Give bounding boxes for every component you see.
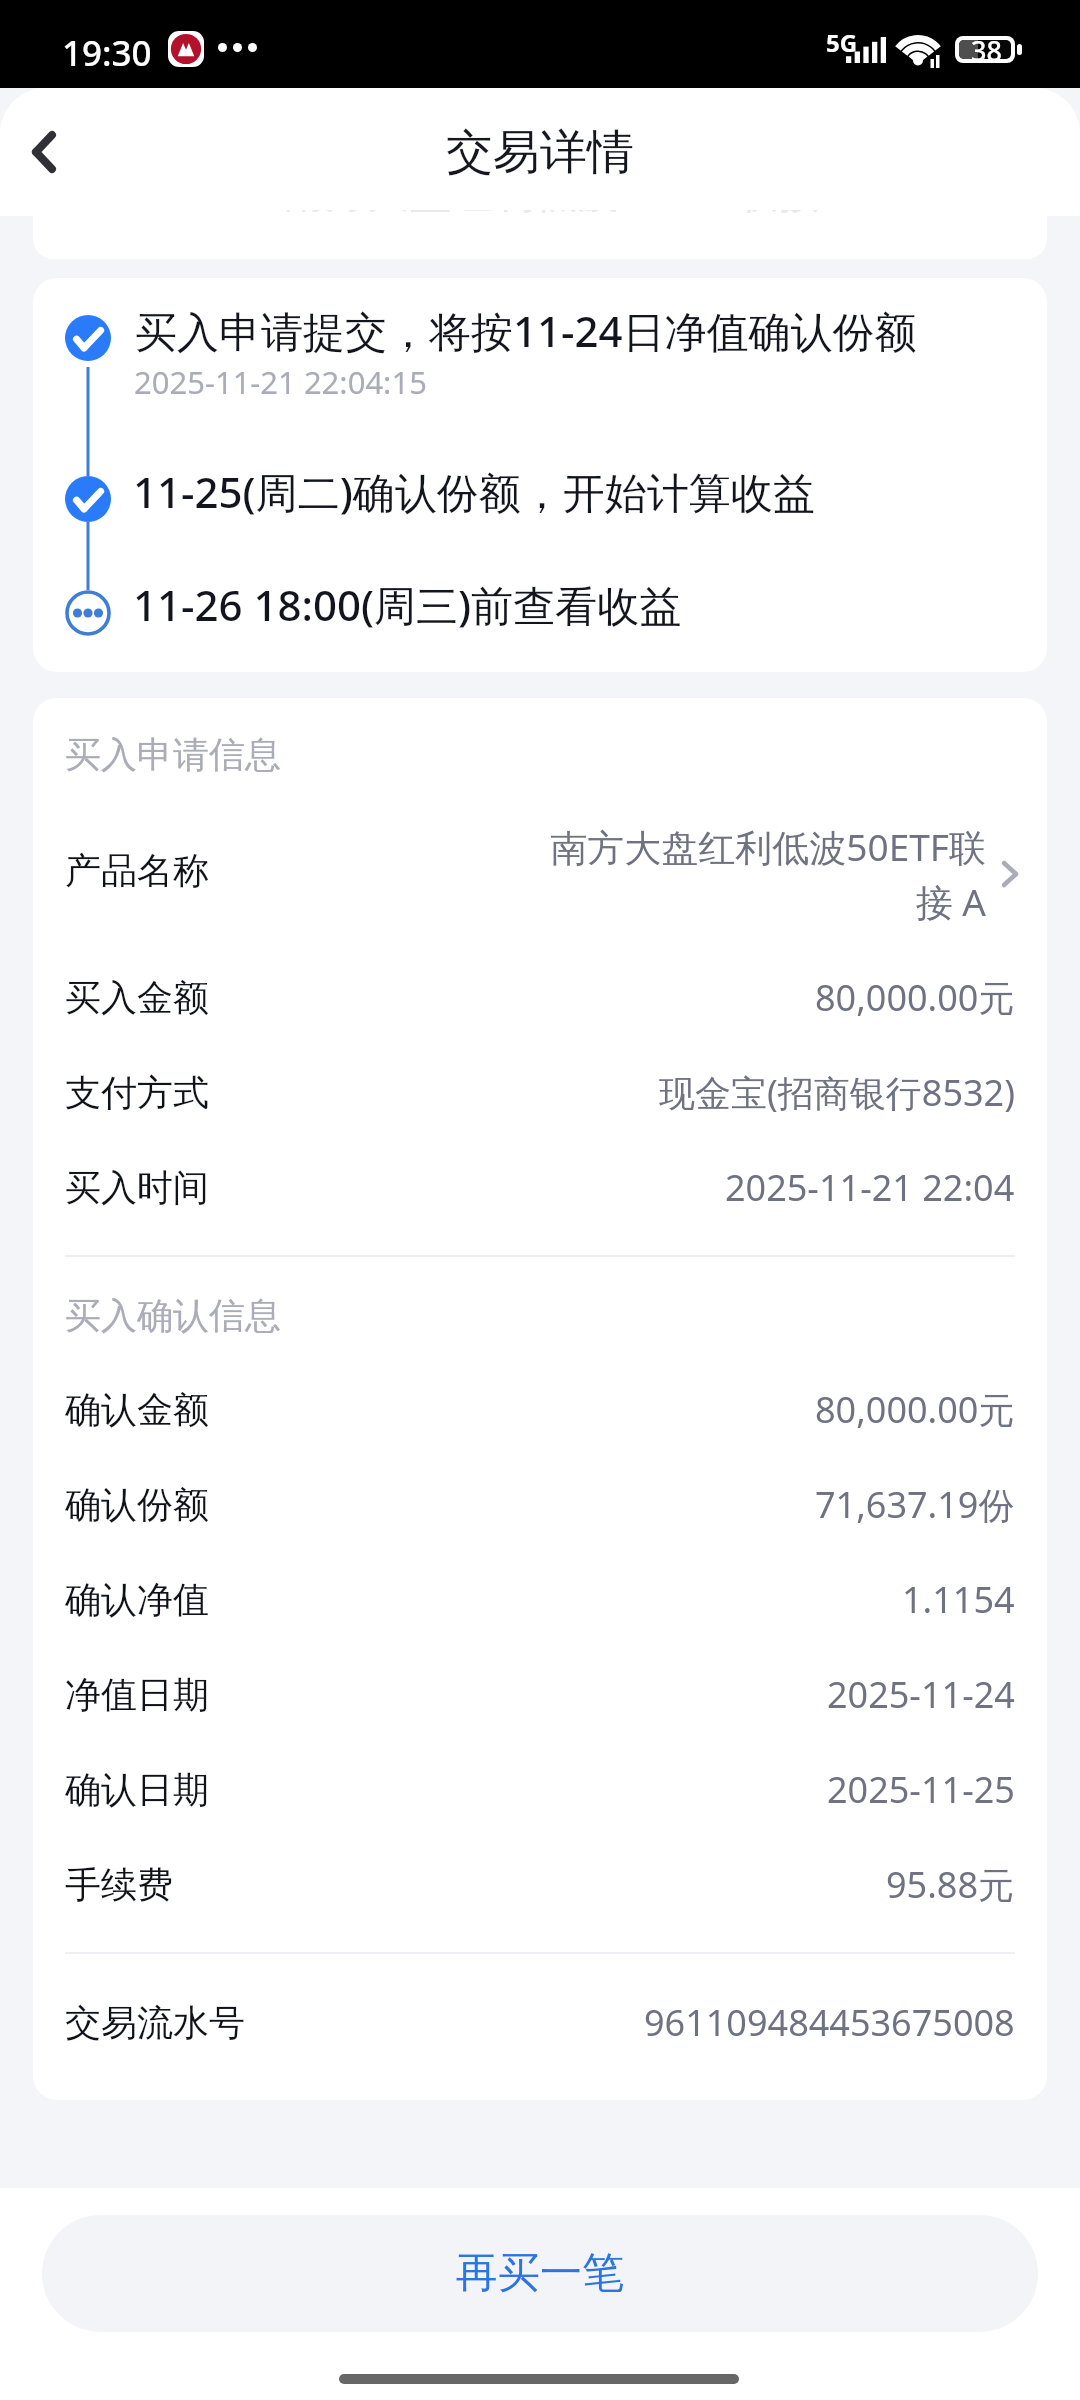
- button[interactable]: 再买一笔: [42, 2215, 1038, 2332]
- staticText: 买入申请提交，将按11-24日净值确认份额: [135, 302, 917, 359]
- staticText: 19:30: [62, 29, 152, 77]
- staticText: 南方大盘红利低波50ETF联接 A: [534, 821, 986, 927]
- staticText: 买入申请信息: [65, 732, 281, 777]
- staticText: 买入时间: [65, 1165, 209, 1210]
- staticText: 71,637.19份: [815, 1480, 1015, 1529]
- staticText: 2025-11-24: [827, 1670, 1015, 1719]
- staticText: 2025-11-25: [827, 1765, 1015, 1814]
- button[interactable]: 确认净值: [33, 1552, 1047, 1647]
- button[interactable]: 确认金额: [33, 1362, 1047, 1457]
- staticText: 38: [971, 32, 1002, 69]
- button[interactable]: 交易流水号: [33, 1975, 1047, 2070]
- button[interactable]: 确认日期: [33, 1742, 1047, 1837]
- staticText: 961109484453675008: [644, 1998, 1015, 2047]
- staticText: 95.88元: [886, 1860, 1015, 1909]
- staticText: 11-25(周二)确认份额，开始计算收益: [133, 463, 815, 520]
- staticText: 80,000.00元: [815, 973, 1015, 1022]
- staticText: 确认日期: [65, 1767, 209, 1812]
- staticText: 交易流水号: [65, 2000, 245, 2045]
- staticText: 11-26 18:00(周三)前查看收益: [133, 576, 682, 633]
- staticText: 确认净值: [65, 1577, 209, 1622]
- staticText: 交易详情: [446, 123, 634, 182]
- staticText: 80,000.00元: [815, 1385, 1015, 1434]
- button[interactable]: 买入时间: [33, 1140, 1047, 1235]
- staticText: 买入确认信息: [65, 1293, 281, 1338]
- button[interactable]: 确认份额: [33, 1457, 1047, 1552]
- staticText: 净值日期: [65, 1672, 209, 1717]
- button[interactable]: 支付方式: [33, 1045, 1047, 1140]
- staticText: 1.1154: [902, 1575, 1015, 1624]
- staticText: 再买一笔: [456, 2247, 624, 2300]
- button[interactable]: 手续费: [33, 1837, 1047, 1932]
- button[interactable]: 净值日期: [33, 1647, 1047, 1742]
- staticText: 南方大盘红利低波50ETF联接 A: [283, 162, 859, 219]
- staticText: 确认金额: [65, 1387, 209, 1432]
- button[interactable]: 产品名称: [33, 796, 1047, 944]
- staticText: 现金宝(招商银行8532): [659, 1068, 1015, 1117]
- staticText: 支付方式: [65, 1070, 209, 1115]
- staticText: 买入金额: [65, 975, 209, 1020]
- staticText: 确认份额: [65, 1482, 209, 1527]
- staticText: 2025-11-21 22:04:15: [134, 361, 427, 403]
- button[interactable]: 买入金额: [33, 950, 1047, 1045]
- staticText: 5G: [826, 26, 858, 59]
- staticText: 手续费: [65, 1862, 173, 1907]
- staticText: 产品名称: [65, 848, 209, 893]
- button[interactable]: Back: [0, 88, 110, 216]
- staticText: 2025-11-21 22:04: [725, 1163, 1015, 1212]
